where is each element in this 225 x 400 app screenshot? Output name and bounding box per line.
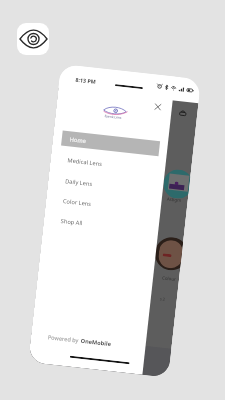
button[interactable]: Home (52, 130, 168, 157)
button[interactable]: Close navigation drawer (152, 101, 162, 111)
staticText: s 2 (160, 296, 166, 302)
staticText: 8:13 PM (75, 76, 97, 85)
staticText: OneMobile (80, 337, 112, 348)
staticText: Powered by (47, 333, 81, 345)
staticText: Home (69, 135, 87, 145)
staticText: Colour (162, 274, 176, 282)
button[interactable]: Daily Lens (47, 171, 163, 199)
button[interactable]: Shop All (43, 211, 159, 239)
button[interactable]: Profile (136, 347, 146, 357)
staticText: Daily Lens (65, 177, 93, 188)
staticText: Medical Lens (67, 156, 103, 168)
staticText: Color Lens (62, 197, 92, 208)
staticText: Shop All (60, 217, 83, 227)
staticText: Astigm (167, 195, 182, 203)
button[interactable]: Eyenk Lens app icon (17, 23, 49, 55)
button[interactable]: Shopping cart (178, 108, 188, 118)
staticText: Eyenk Lens (104, 114, 122, 120)
button[interactable]: Medical Lens (50, 150, 166, 178)
button[interactable]: Color Lens (45, 191, 161, 219)
